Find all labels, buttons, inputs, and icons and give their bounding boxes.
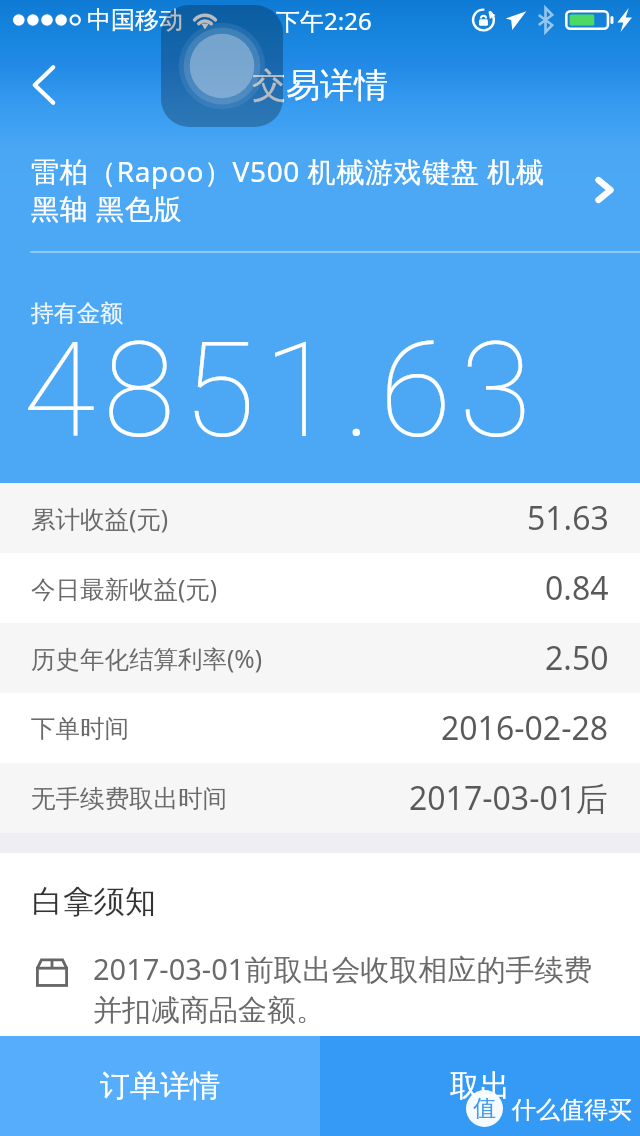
button[interactable]: 取出 [320,1036,640,1136]
staticText: 订单详情 [100,1067,220,1105]
button[interactable]: Back [14,51,74,111]
button[interactable]: 订单详情 [0,1036,320,1136]
staticText: 51.63 [527,496,609,540]
staticText: 历史年化结算利率(%) [31,642,263,675]
staticText: 取出 [450,1067,510,1105]
button[interactable]: 今日最新收益(元) [0,553,640,623]
staticText: 2016-02-28 [441,706,609,750]
staticText: 雷柏（Rapoo）V500 机械游戏键盘 机械 黑轴 黑色版 [31,152,591,228]
staticText: 0.84 [545,566,609,610]
staticText: 今日最新收益(元) [31,572,218,605]
button[interactable]: 历史年化结算利率(%) [0,623,640,693]
staticText: 持有金额 [31,299,123,328]
button[interactable]: 下单时间 [0,693,640,763]
button[interactable]: 无手续费取出时间 [0,763,640,833]
staticText: 值 [473,1094,496,1123]
staticText: 交易详情 [252,64,388,107]
staticText: 2.50 [545,636,609,680]
staticText: 白拿须知 [32,882,156,921]
staticText: 下单时间 [31,713,129,744]
staticText: 2017-03-01后 [409,776,609,820]
button[interactable]: 雷柏（Rapoo）V500 机械游戏键盘 机械 黑轴 黑色版 [0,125,640,255]
staticText: 什么值得买 [512,1095,632,1125]
staticText: 中国移动 [87,5,183,35]
staticText: 无手续费取出时间 [31,783,227,814]
staticText: 4851.63 [23,314,540,469]
staticText: 下午2:26 [276,4,372,37]
button[interactable]: AssistiveTouch [161,5,283,127]
button[interactable]: 累计收益(元) [0,483,640,553]
staticText: 2017-03-01前取出会收取相应的手续费 并扣减商品金额。 [93,949,593,1028]
staticText: 累计收益(元) [31,502,169,535]
